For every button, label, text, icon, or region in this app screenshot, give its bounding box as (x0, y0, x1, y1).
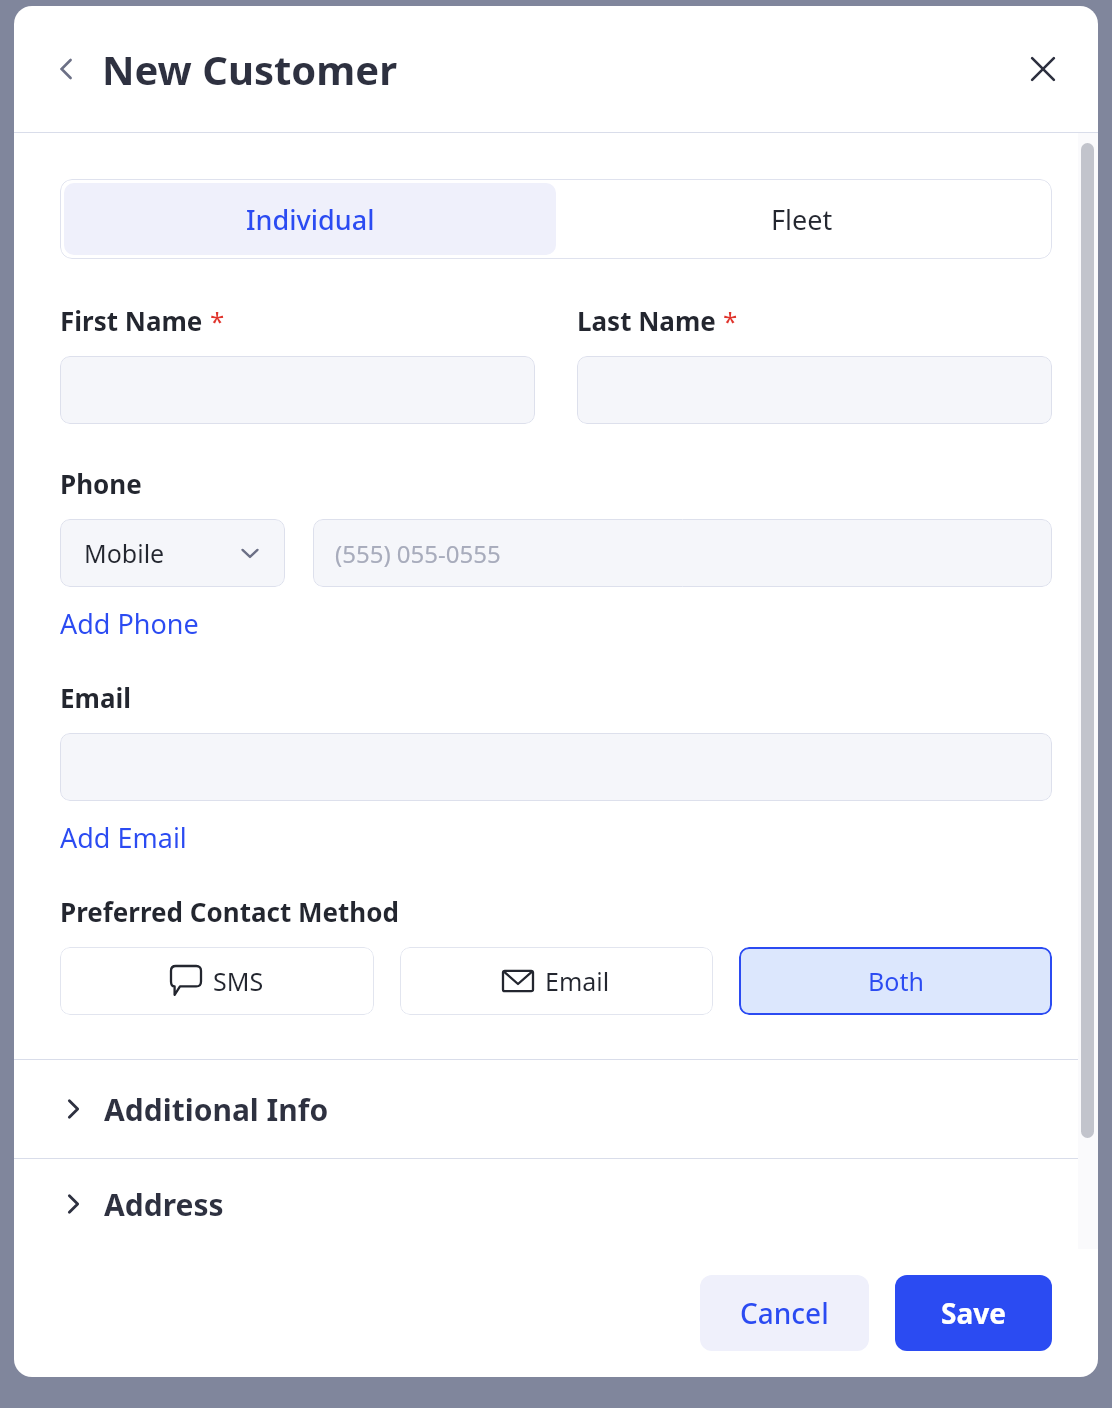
button[interactable]: (555) 055-0555 (313, 519, 1052, 587)
staticText: Add Phone (60, 605, 199, 642)
staticText: SMS (213, 964, 264, 998)
button[interactable]: Email (400, 947, 713, 1015)
staticText: Last Name (577, 303, 716, 338)
staticText: Phone (60, 466, 142, 501)
button[interactable]: Additional Info (14, 1060, 1098, 1158)
button[interactable]: Cancel (700, 1275, 869, 1351)
staticText: * (210, 303, 225, 338)
staticText: (555) 055-0555 (335, 537, 501, 570)
button[interactable] (577, 356, 1052, 424)
button[interactable]: Add Phone (60, 605, 199, 642)
staticText: Cancel (740, 1294, 829, 1332)
staticText: Both (868, 964, 924, 998)
button[interactable]: Save (895, 1275, 1052, 1351)
staticText: Additional Info (104, 1089, 329, 1130)
button[interactable]: Both (739, 947, 1052, 1015)
button[interactable]: Mobile (60, 519, 285, 587)
staticText: Mobile (84, 536, 165, 570)
staticText: New Customer (102, 42, 398, 96)
staticText: First Name (60, 303, 203, 338)
button[interactable]: Address (14, 1159, 1098, 1249)
button[interactable]: Fleet (556, 183, 1048, 255)
staticText: Email (545, 964, 610, 998)
staticText: Email (60, 680, 132, 715)
staticText: * (723, 303, 738, 338)
button[interactable]: Individual (64, 183, 556, 255)
staticText: Individual (246, 201, 375, 238)
staticText: Address (104, 1184, 224, 1225)
staticText: Save (941, 1294, 1006, 1332)
staticText: Preferred Contact Method (60, 894, 399, 929)
staticText: Fleet (771, 201, 833, 238)
button[interactable] (60, 733, 1052, 801)
staticText: Add Email (60, 819, 187, 856)
button[interactable]: Close (1018, 44, 1068, 94)
button[interactable]: SMS (60, 947, 374, 1015)
button[interactable] (60, 356, 535, 424)
button[interactable]: Add Email (60, 819, 187, 856)
button[interactable]: Back (44, 46, 90, 92)
